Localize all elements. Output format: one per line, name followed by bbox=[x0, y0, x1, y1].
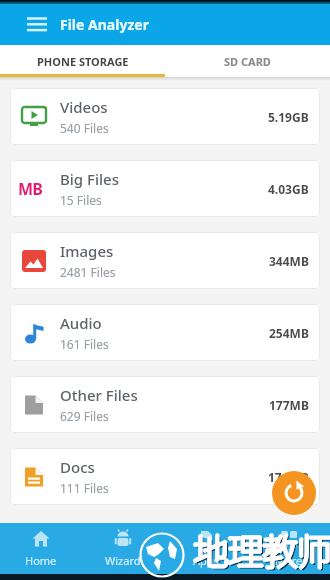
staticText: Videos bbox=[60, 97, 108, 117]
staticText: 161 Files bbox=[60, 336, 109, 352]
staticText: Apps bbox=[193, 553, 219, 568]
button[interactable] bbox=[27, 17, 47, 32]
staticText: 17.9GB bbox=[268, 469, 309, 485]
staticText: SD CARD bbox=[224, 54, 271, 69]
staticText: 344MB bbox=[269, 253, 309, 269]
staticText: Docs bbox=[60, 457, 95, 477]
button[interactable]: Videos bbox=[10, 88, 320, 145]
staticText: Wizard bbox=[105, 553, 141, 568]
button[interactable]: PHONE STORAGE bbox=[0, 45, 165, 77]
button[interactable]: MB bbox=[10, 160, 320, 217]
staticText: 15 Files bbox=[60, 192, 102, 208]
staticText: 地理教师 bbox=[192, 523, 330, 575]
button[interactable]: Docs bbox=[10, 448, 320, 505]
staticText: Other Files bbox=[60, 385, 138, 405]
staticText: 地理教师 bbox=[194, 523, 330, 575]
staticText: 111 Files bbox=[60, 480, 109, 496]
staticText: 地理教师 bbox=[195, 525, 330, 577]
staticText: 2481 Files bbox=[60, 264, 116, 280]
staticText: MB bbox=[18, 178, 50, 200]
button[interactable]: Other Files bbox=[10, 376, 320, 433]
staticText: 254MB bbox=[269, 325, 309, 341]
staticText: 629 Files bbox=[60, 408, 109, 424]
button[interactable]: Audio bbox=[10, 304, 320, 361]
staticText: File Analyzer bbox=[60, 15, 149, 34]
staticText: 5.19GB bbox=[268, 109, 309, 125]
staticText: PHONE STORAGE bbox=[37, 54, 129, 69]
staticText: Big Files bbox=[60, 169, 119, 189]
button[interactable]: Images bbox=[10, 232, 320, 289]
staticText: More bbox=[275, 553, 303, 568]
button[interactable]: SD CARD bbox=[165, 45, 330, 77]
button[interactable]: Wizard bbox=[82, 523, 164, 574]
button[interactable]: More bbox=[247, 523, 330, 574]
staticText: 地理教师 bbox=[193, 523, 330, 575]
staticText: 地理教师 bbox=[193, 522, 330, 574]
staticText: 4.03GB bbox=[268, 181, 309, 197]
button[interactable] bbox=[272, 471, 316, 515]
button[interactable]: Home bbox=[0, 523, 82, 574]
staticText: Audio bbox=[60, 313, 102, 333]
staticText: Images bbox=[60, 241, 114, 261]
staticText: 177MB bbox=[269, 397, 309, 413]
staticText: 540 Files bbox=[60, 120, 109, 136]
button[interactable]: Apps bbox=[164, 523, 247, 574]
staticText: Home bbox=[25, 553, 57, 568]
staticText: 地理教师 bbox=[193, 524, 330, 576]
